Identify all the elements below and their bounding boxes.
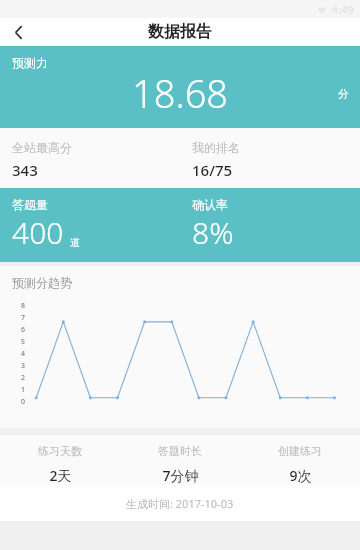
button[interactable]: 我的排名: [180, 128, 360, 188]
button[interactable]: 创建练习: [240, 435, 360, 485]
staticText: 3: [21, 361, 26, 371]
button[interactable]: 确认率: [180, 188, 360, 262]
staticText: 分: [338, 87, 349, 101]
staticText: 18.68: [132, 67, 229, 119]
staticText: 5: [21, 337, 26, 347]
staticText: 2: [21, 373, 26, 383]
staticText: 8%: [192, 212, 234, 253]
staticText: 答题量: [12, 197, 48, 212]
staticText: 6: [21, 325, 26, 335]
button[interactable]: 答题量: [0, 188, 180, 262]
staticText: 答题时长: [158, 444, 202, 458]
button[interactable]: 练习天数: [0, 435, 120, 485]
staticText: 400: [12, 212, 64, 253]
staticText: 7分钟: [162, 466, 199, 485]
staticText: 2天: [49, 466, 72, 485]
button[interactable]: 答题时长: [120, 435, 240, 485]
staticText: 我的排名: [192, 140, 240, 155]
staticText: 16/75: [192, 160, 233, 180]
staticText: 确认率: [192, 197, 228, 212]
button[interactable]: 全站最高分: [0, 128, 180, 188]
staticText: 0: [21, 397, 26, 407]
staticText: 8: [21, 301, 26, 311]
button[interactable]: Back: [0, 18, 36, 46]
staticText: 4: [21, 349, 26, 359]
staticText: 数据报告: [148, 22, 212, 42]
staticText: 预测分趋势: [12, 275, 72, 290]
staticText: 练习天数: [38, 444, 82, 458]
staticText: 道: [70, 236, 80, 249]
staticText: 创建练习: [278, 444, 322, 458]
staticText: 9次: [289, 466, 312, 485]
staticText: 生成时间: 2017-10-03: [126, 496, 234, 511]
staticText: 7: [21, 313, 26, 323]
staticText: 4:49: [332, 2, 354, 17]
staticText: 预测力: [12, 55, 48, 70]
staticText: 343: [12, 160, 38, 180]
staticText: 1: [21, 385, 26, 395]
staticText: 全站最高分: [12, 140, 72, 155]
